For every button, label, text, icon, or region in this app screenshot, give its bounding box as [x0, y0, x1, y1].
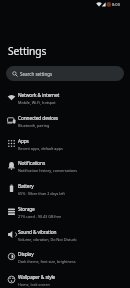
staticText: Notifications: [18, 160, 46, 167]
staticText: 21% used - 90.43 GB free: [18, 214, 62, 219]
staticText: Home, lock screen: [18, 282, 50, 287]
staticText: Search settings: [20, 71, 53, 77]
staticText: Mobile, Wi‑Fi, hotspot: [18, 100, 56, 105]
staticText: Network & internet: [18, 92, 60, 99]
staticText: Storage: [18, 206, 35, 213]
staticText: Volume, vibration, Do Not Disturb: [18, 237, 77, 242]
button[interactable]: Apps: [0, 133, 130, 156]
button[interactable]: Notifications: [0, 155, 130, 178]
staticText: Connected devices: [18, 115, 59, 122]
button[interactable]: Storage: [0, 201, 130, 224]
button[interactable]: Battery: [0, 178, 130, 201]
staticText: Notification history, conversations: [18, 168, 78, 173]
button[interactable]: Sound & vibration: [0, 224, 130, 247]
button[interactable]: Wallpaper & style: [0, 269, 130, 288]
button[interactable]: Network & internet: [0, 87, 130, 110]
staticText: Recent apps, default apps: [18, 146, 63, 151]
staticText: Sound & vibration: [18, 229, 57, 236]
staticText: Apps: [18, 138, 29, 145]
button[interactable]: Search settings: [6, 66, 124, 81]
staticText: Battery: [18, 183, 34, 190]
staticText: 8:00: [112, 2, 120, 7]
staticText: 65% · More than 2 days left: [18, 191, 65, 196]
staticText: Dark theme, font size, brightness: [18, 259, 76, 264]
button[interactable]: Display: [0, 246, 130, 269]
staticText: Settings: [8, 44, 47, 58]
staticText: Display: [18, 251, 34, 258]
button[interactable]: Connected devices: [0, 110, 130, 133]
staticText: Wallpaper & style: [18, 274, 56, 281]
staticText: Bluetooth, pairing: [18, 123, 50, 128]
